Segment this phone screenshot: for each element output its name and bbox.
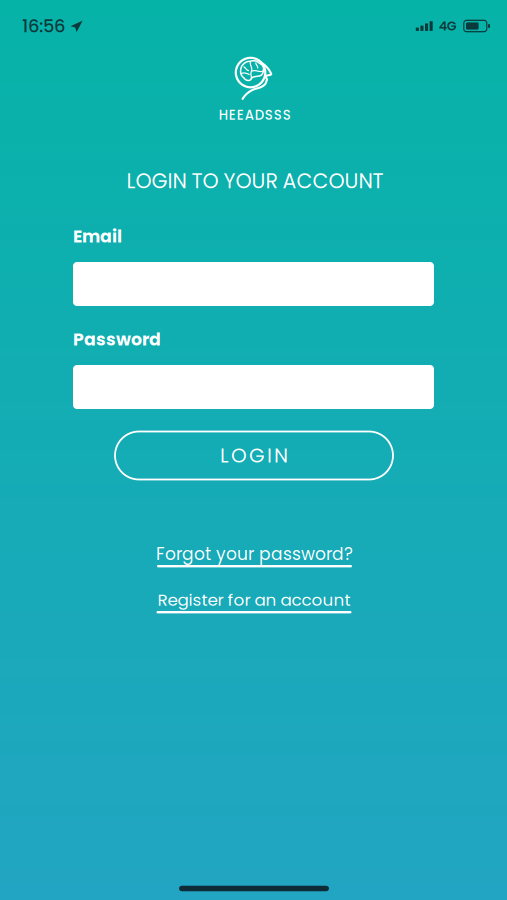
button[interactable]: L O G I N <box>115 431 393 479</box>
staticText: 16:56 <box>22 13 65 38</box>
staticText: H E E A D S S S <box>219 106 291 124</box>
staticText: Email <box>73 224 122 249</box>
staticText: Forgot your password? <box>156 542 353 566</box>
staticText: Password <box>73 327 161 352</box>
button[interactable]: Register for an account <box>143 588 364 622</box>
staticText: LOGIN TO YOUR ACCOUNT <box>126 167 383 195</box>
button[interactable]: Forgot your password? <box>144 542 365 576</box>
staticText: Register for an account <box>157 588 350 611</box>
staticText: L O G I N <box>220 441 288 469</box>
staticText: 4G <box>439 17 457 35</box>
